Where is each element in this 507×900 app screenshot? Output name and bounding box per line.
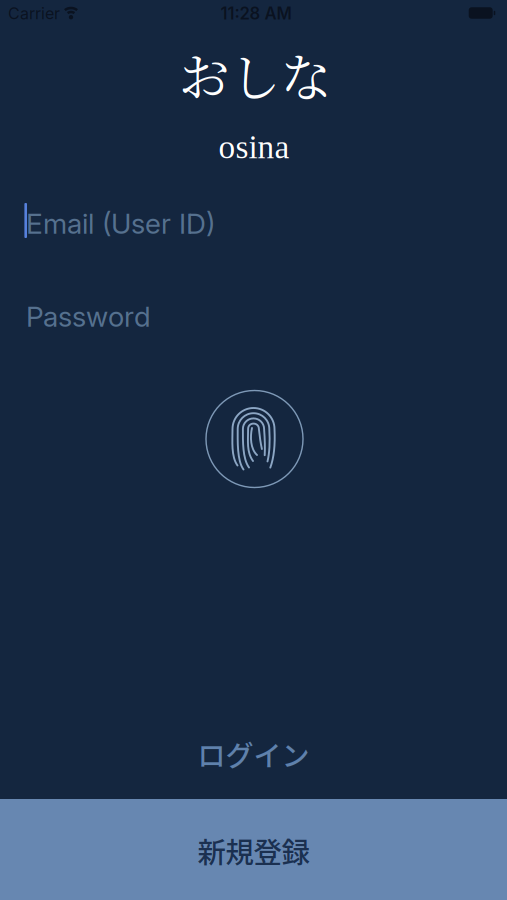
staticText: Password <box>0 301 104 331</box>
staticText: 新規登録 <box>197 830 309 871</box>
staticText: Carrier <box>8 4 60 23</box>
staticText: osina <box>218 128 289 165</box>
staticText: おしな <box>178 37 331 111</box>
staticText: ログイン <box>197 734 309 774</box>
button[interactable]: 新規登録 <box>0 799 507 900</box>
secureTextField[interactable]: Password <box>0 301 507 331</box>
staticText: Password <box>26 300 151 333</box>
button[interactable]: Touch ID <box>192 376 317 501</box>
staticText: Email (User ID) <box>26 207 215 240</box>
staticText: 11:28 AM <box>220 3 291 24</box>
staticText: Email (User ID) <box>0 208 160 238</box>
textField[interactable]: Email (User ID) <box>0 208 507 238</box>
button[interactable]: ログイン <box>0 724 507 784</box>
